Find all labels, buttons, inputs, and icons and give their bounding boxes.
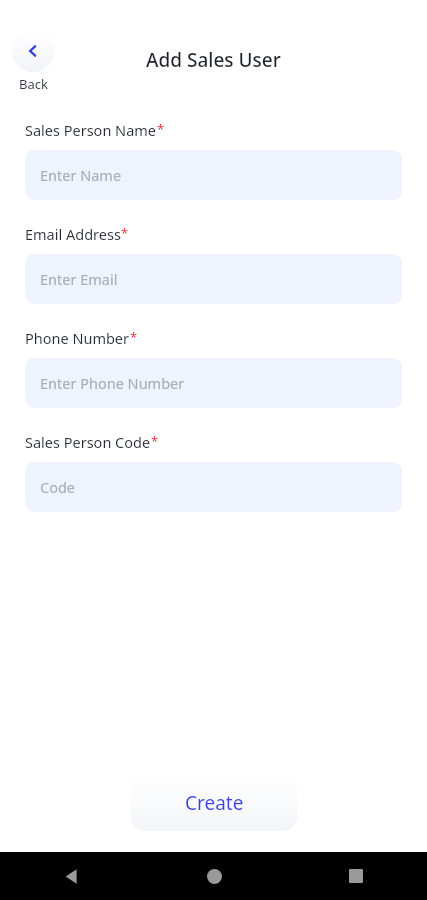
staticText: Phone Number [25, 328, 130, 348]
button[interactable]: Enter Phone Number [25, 358, 402, 408]
staticText: * [151, 432, 159, 450]
button[interactable]: Create [131, 775, 297, 831]
staticText: Code [40, 477, 76, 497]
staticText: Enter Email [40, 269, 118, 289]
button[interactable]: Home [143, 869, 285, 884]
staticText: Sales Person Name [25, 120, 157, 140]
staticText: Enter Phone Number [40, 373, 185, 393]
staticText: Sales Person Code [25, 432, 151, 452]
staticText: Back [19, 75, 48, 93]
staticText: Create [185, 790, 244, 816]
staticText: * [157, 120, 165, 138]
staticText: * [130, 328, 138, 346]
staticText: Enter Name [40, 165, 122, 185]
button[interactable]: Recent apps [285, 869, 427, 883]
button[interactable]: Code [25, 462, 402, 512]
button[interactable]: Enter Email [25, 254, 402, 304]
button[interactable]: Back [12, 30, 54, 93]
staticText: Email Address [25, 224, 121, 244]
staticText: Add Sales User [146, 47, 281, 73]
button[interactable]: Enter Name [25, 150, 402, 200]
button[interactable]: Back [0, 868, 143, 885]
staticText: * [121, 224, 129, 242]
